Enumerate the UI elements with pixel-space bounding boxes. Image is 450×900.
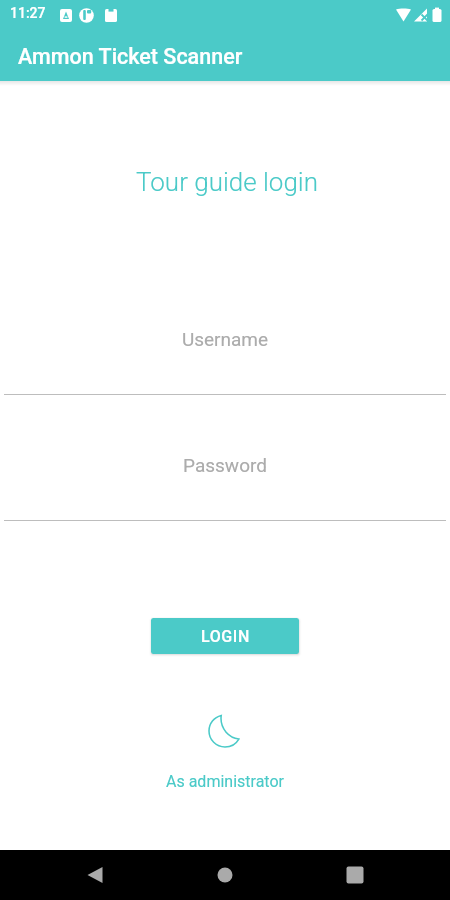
staticText: Username — [0, 328, 450, 350]
staticText: 11:27 — [10, 5, 46, 21]
staticText: Password — [0, 454, 450, 476]
other: Night mode — [205, 710, 245, 750]
button[interactable]: Home — [200, 850, 250, 900]
button[interactable]: Username — [0, 309, 450, 395]
staticText: Tour guide login — [2, 167, 450, 197]
button[interactable]: Back — [70, 850, 120, 900]
staticText: LOGIN — [201, 627, 250, 646]
button[interactable]: LOGIN — [151, 618, 299, 654]
staticText: As administrator — [166, 772, 284, 791]
button[interactable]: Recent apps — [330, 850, 380, 900]
button[interactable]: Night mode — [0, 710, 450, 791]
staticText: Ammon Ticket Scanner — [18, 44, 243, 69]
button[interactable]: Password — [0, 435, 450, 521]
